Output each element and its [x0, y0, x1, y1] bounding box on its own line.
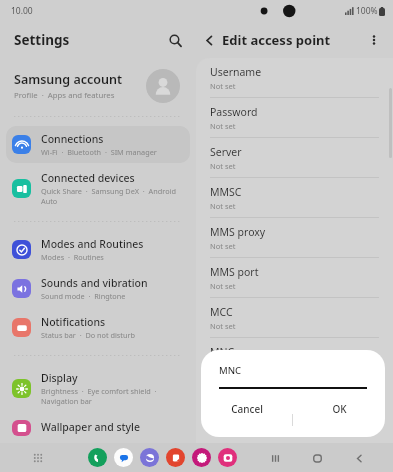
staticText: Username	[210, 65, 262, 79]
button[interactable]: Server	[196, 138, 393, 177]
staticText: OK	[332, 402, 347, 416]
staticText: Settings	[14, 31, 70, 49]
staticText: Auto	[41, 196, 58, 206]
staticText: MNC	[210, 345, 235, 359]
staticText: Not set	[210, 281, 236, 291]
staticText: Server	[210, 145, 242, 159]
staticText: Not set	[210, 201, 236, 211]
staticText: Notifications	[41, 315, 106, 329]
staticText: MCC	[210, 305, 233, 319]
button[interactable]: All apps	[28, 448, 48, 468]
button[interactable]: Back	[196, 27, 222, 53]
button[interactable]: More options	[361, 27, 387, 53]
button[interactable]: Back	[347, 446, 371, 470]
button[interactable]: Search	[162, 27, 188, 53]
staticText: Sound mode · Ringtone	[41, 291, 126, 301]
staticText: Quick Share · Samsung DeX · Android	[41, 186, 176, 196]
button[interactable]: Connections	[6, 126, 190, 163]
button[interactable]: MNC	[196, 338, 393, 377]
button[interactable]: Wallpaper and style	[6, 414, 190, 442]
staticText: Display	[41, 371, 78, 385]
button[interactable]: Home	[305, 446, 329, 470]
button[interactable]: MMSC	[196, 178, 393, 217]
staticText: MMS proxy	[210, 225, 266, 239]
staticText: Wi-Fi · Bluetooth · SIM manager	[41, 147, 157, 157]
button[interactable]: Internet	[140, 448, 159, 467]
button[interactable]: OK	[293, 402, 385, 437]
staticText: Not set	[210, 241, 236, 251]
button[interactable]: Username	[196, 58, 393, 97]
button[interactable]: Notifications	[6, 309, 190, 346]
staticText: Navigation bar	[41, 396, 92, 406]
staticText: Profile · Apps and features	[14, 90, 115, 101]
staticText: Not set	[210, 161, 236, 171]
button[interactable]: App	[192, 448, 211, 467]
staticText: Modes · Routines	[41, 252, 104, 262]
button[interactable]: Camera	[218, 448, 237, 467]
button[interactable]: MMS proxy	[196, 218, 393, 257]
button[interactable]: Galaxy Store	[166, 448, 185, 467]
staticText: Sounds and vibration	[41, 276, 148, 290]
button[interactable]: Display	[6, 365, 190, 412]
staticText: 10.00	[11, 5, 33, 17]
button[interactable]: Sounds and vibration	[6, 270, 190, 307]
staticText: Brightness · Eye comfort shield ·	[41, 386, 157, 396]
button[interactable]: Samsung account	[0, 58, 196, 114]
button[interactable]: Password	[196, 98, 393, 137]
staticText: Connections	[41, 132, 104, 146]
button[interactable]: Cancel	[201, 402, 292, 437]
button[interactable]: MCC	[196, 298, 393, 337]
staticText: 100%	[356, 5, 378, 17]
button[interactable]: Messages	[114, 448, 133, 467]
staticText: Password	[210, 105, 258, 119]
button[interactable]: Recents	[263, 446, 287, 470]
staticText: Samsung account	[14, 71, 122, 88]
staticText: Edit access point	[222, 31, 331, 49]
staticText: Modes and Routines	[41, 237, 144, 251]
button[interactable]: Modes and Routines	[6, 231, 190, 268]
staticText: Not set	[210, 121, 236, 131]
staticText: Cancel	[231, 402, 263, 416]
button[interactable]: Connected devices	[6, 165, 190, 212]
staticText: Not set	[210, 361, 236, 371]
staticText: Not set	[210, 81, 236, 91]
staticText: Not set	[210, 321, 236, 331]
button[interactable]: MMS port	[196, 258, 393, 297]
staticText: Wallpaper and style	[41, 420, 140, 434]
button[interactable]: Phone	[88, 448, 107, 467]
staticText: MNC	[219, 364, 242, 377]
staticText: Status bar · Do not disturb	[41, 330, 136, 340]
staticText: Connected devices	[41, 171, 135, 185]
staticText: MMS port	[210, 265, 259, 279]
staticText: MMSC	[210, 185, 242, 199]
